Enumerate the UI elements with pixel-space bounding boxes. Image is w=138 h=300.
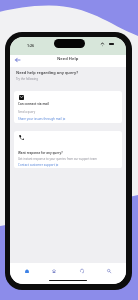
staticText: Share your issues through mail [18,117,62,121]
button[interactable]: Back [13,56,21,64]
button[interactable]: Want response for any query? [14,131,122,168]
staticText: Send a query [18,110,114,114]
staticText: Can connect via mail [18,102,49,106]
staticText: Try the following [16,77,38,81]
staticText: 1:26 [27,43,35,48]
staticText: Need Help [57,56,79,62]
button[interactable]: Can connect via mail [14,91,122,123]
button[interactable]: Community [44,265,64,277]
staticText: Contact customer support [18,163,55,167]
button[interactable]: Home [17,265,37,277]
staticText: Need help regarding any query? [16,70,79,75]
button[interactable]: Search [99,265,119,277]
staticText: Get instant response to your queries fro… [18,157,114,161]
staticText: Want response for any query? [18,151,63,155]
button[interactable]: Support [72,265,92,277]
